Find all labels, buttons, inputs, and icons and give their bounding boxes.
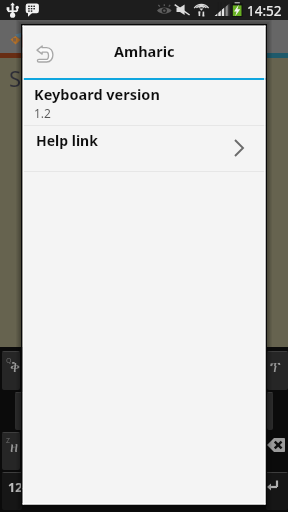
button[interactable]: Help link bbox=[23, 127, 266, 172]
staticText: 14:52 bbox=[247, 2, 282, 20]
staticText: ዘ bbox=[10, 440, 19, 455]
staticText: Amharic bbox=[114, 41, 175, 61]
staticText: Z bbox=[6, 436, 11, 446]
staticText: ፕ bbox=[270, 360, 281, 375]
staticText: S bbox=[9, 63, 22, 93]
staticText: Help link bbox=[36, 131, 98, 150]
button[interactable]: Keyboard version bbox=[23, 80, 266, 126]
staticText: 1.2 bbox=[34, 105, 51, 121]
staticText: ቅ bbox=[10, 360, 21, 375]
staticText: Keyboard version bbox=[34, 84, 160, 104]
staticText: 12# bbox=[8, 479, 31, 496]
button[interactable]: Navigate up bbox=[28, 36, 64, 72]
staticText: Q bbox=[6, 356, 12, 366]
